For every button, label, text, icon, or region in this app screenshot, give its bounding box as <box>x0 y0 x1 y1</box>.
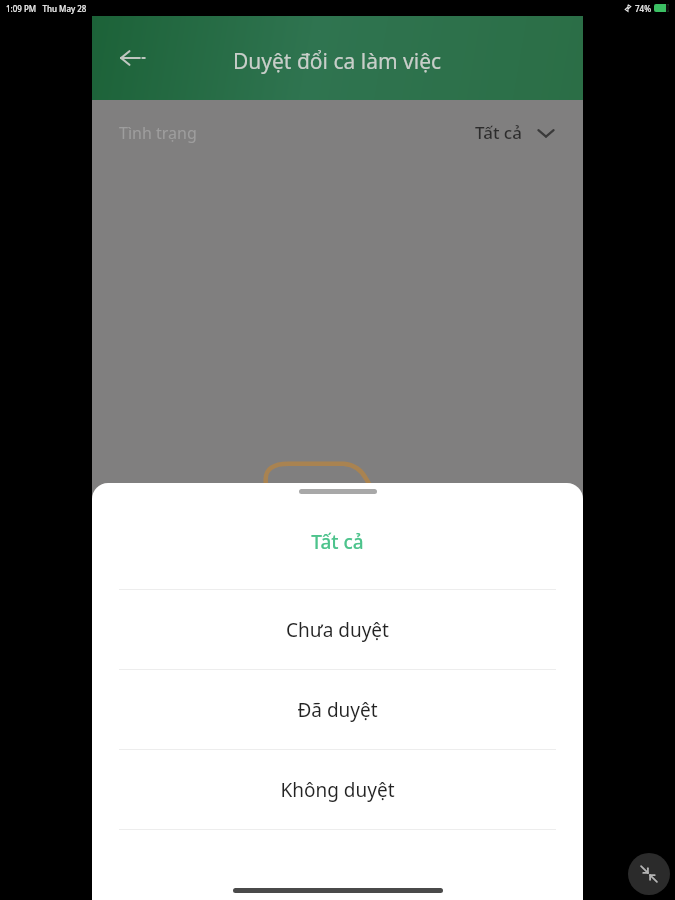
button[interactable]: Đã duyệt <box>92 670 583 749</box>
button[interactable]: Collapse <box>628 853 670 895</box>
staticText: Tất cả <box>475 121 522 144</box>
button[interactable]: Tình trạng <box>119 100 556 165</box>
staticText: Tất cả <box>311 529 364 555</box>
staticText: 1:09 PM Thu May 28 <box>6 3 87 14</box>
button[interactable]: Chưa duyệt <box>92 590 583 669</box>
staticText: 74% <box>635 3 651 14</box>
staticText: Không duyệt <box>280 777 395 803</box>
button[interactable]: Tất cả <box>92 494 583 589</box>
button[interactable]: Back <box>108 34 156 82</box>
staticText: Đã duyệt <box>297 697 378 723</box>
staticText: Duyệt đổi ca làm việc <box>233 47 442 76</box>
staticText: Chưa duyệt <box>286 617 389 643</box>
staticText: Tình trạng <box>119 122 197 144</box>
button[interactable]: Không duyệt <box>92 750 583 829</box>
